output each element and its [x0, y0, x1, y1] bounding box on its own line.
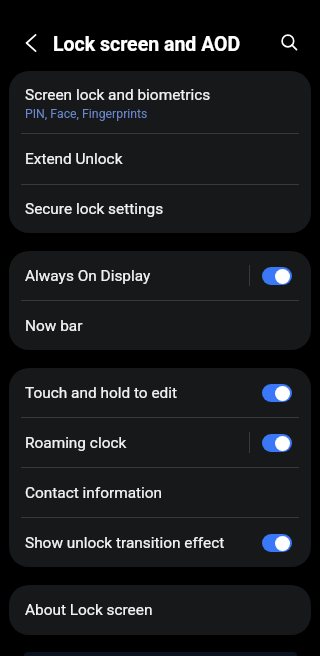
staticText: Roaming clock	[25, 434, 127, 452]
staticText: Screen lock and biometrics	[25, 86, 211, 104]
button[interactable]: Screen lock and biometrics	[9, 71, 311, 133]
button[interactable]: Back	[17, 27, 49, 59]
staticText: Touch and hold to edit	[25, 384, 178, 402]
staticText: Secure lock settings	[25, 200, 164, 218]
button[interactable]: Touch and hold to edit	[9, 368, 311, 417]
staticText: Extend Unlock	[25, 150, 123, 168]
staticText: PIN, Face, Fingerprints	[25, 107, 148, 121]
staticText: Contact information	[25, 484, 163, 502]
button[interactable]: Roaming clock	[9, 418, 311, 467]
staticText: Show unlock transition effect	[25, 534, 225, 552]
staticText: About Lock screen	[25, 601, 153, 619]
button[interactable]: Contact information	[9, 468, 311, 517]
button[interactable]: Show unlock transition effect	[9, 518, 311, 567]
staticText: Now bar	[25, 317, 83, 335]
staticText: Lock screen and AOD	[53, 33, 241, 56]
button[interactable]: Search	[273, 27, 305, 59]
button[interactable]: About Lock screen	[9, 585, 311, 635]
staticText: Always On Display	[25, 267, 151, 285]
button[interactable]: Always On Display	[9, 251, 311, 300]
button[interactable]: Secure lock settings	[9, 185, 311, 233]
button[interactable]: Extend Unlock	[9, 134, 311, 184]
button[interactable]: Now bar	[9, 301, 311, 350]
